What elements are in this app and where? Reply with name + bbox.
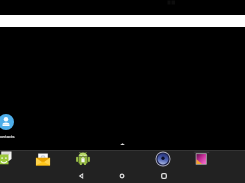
- staticText: Contacts: [0, 134, 15, 140]
- button[interactable]: Recents: [152, 169, 176, 183]
- button[interactable]: Contacts: [0, 114, 26, 140]
- button[interactable]: Market: [75, 151, 91, 167]
- button[interactable]: Messaging: [0, 151, 12, 167]
- button[interactable]: Home: [110, 169, 134, 183]
- button[interactable]: Browser: [155, 151, 171, 167]
- button[interactable]: Back: [69, 169, 93, 183]
- button[interactable]: Email: [35, 151, 51, 167]
- button[interactable]: Gallery: [194, 151, 210, 167]
- button[interactable]: All apps: [118, 140, 127, 146]
